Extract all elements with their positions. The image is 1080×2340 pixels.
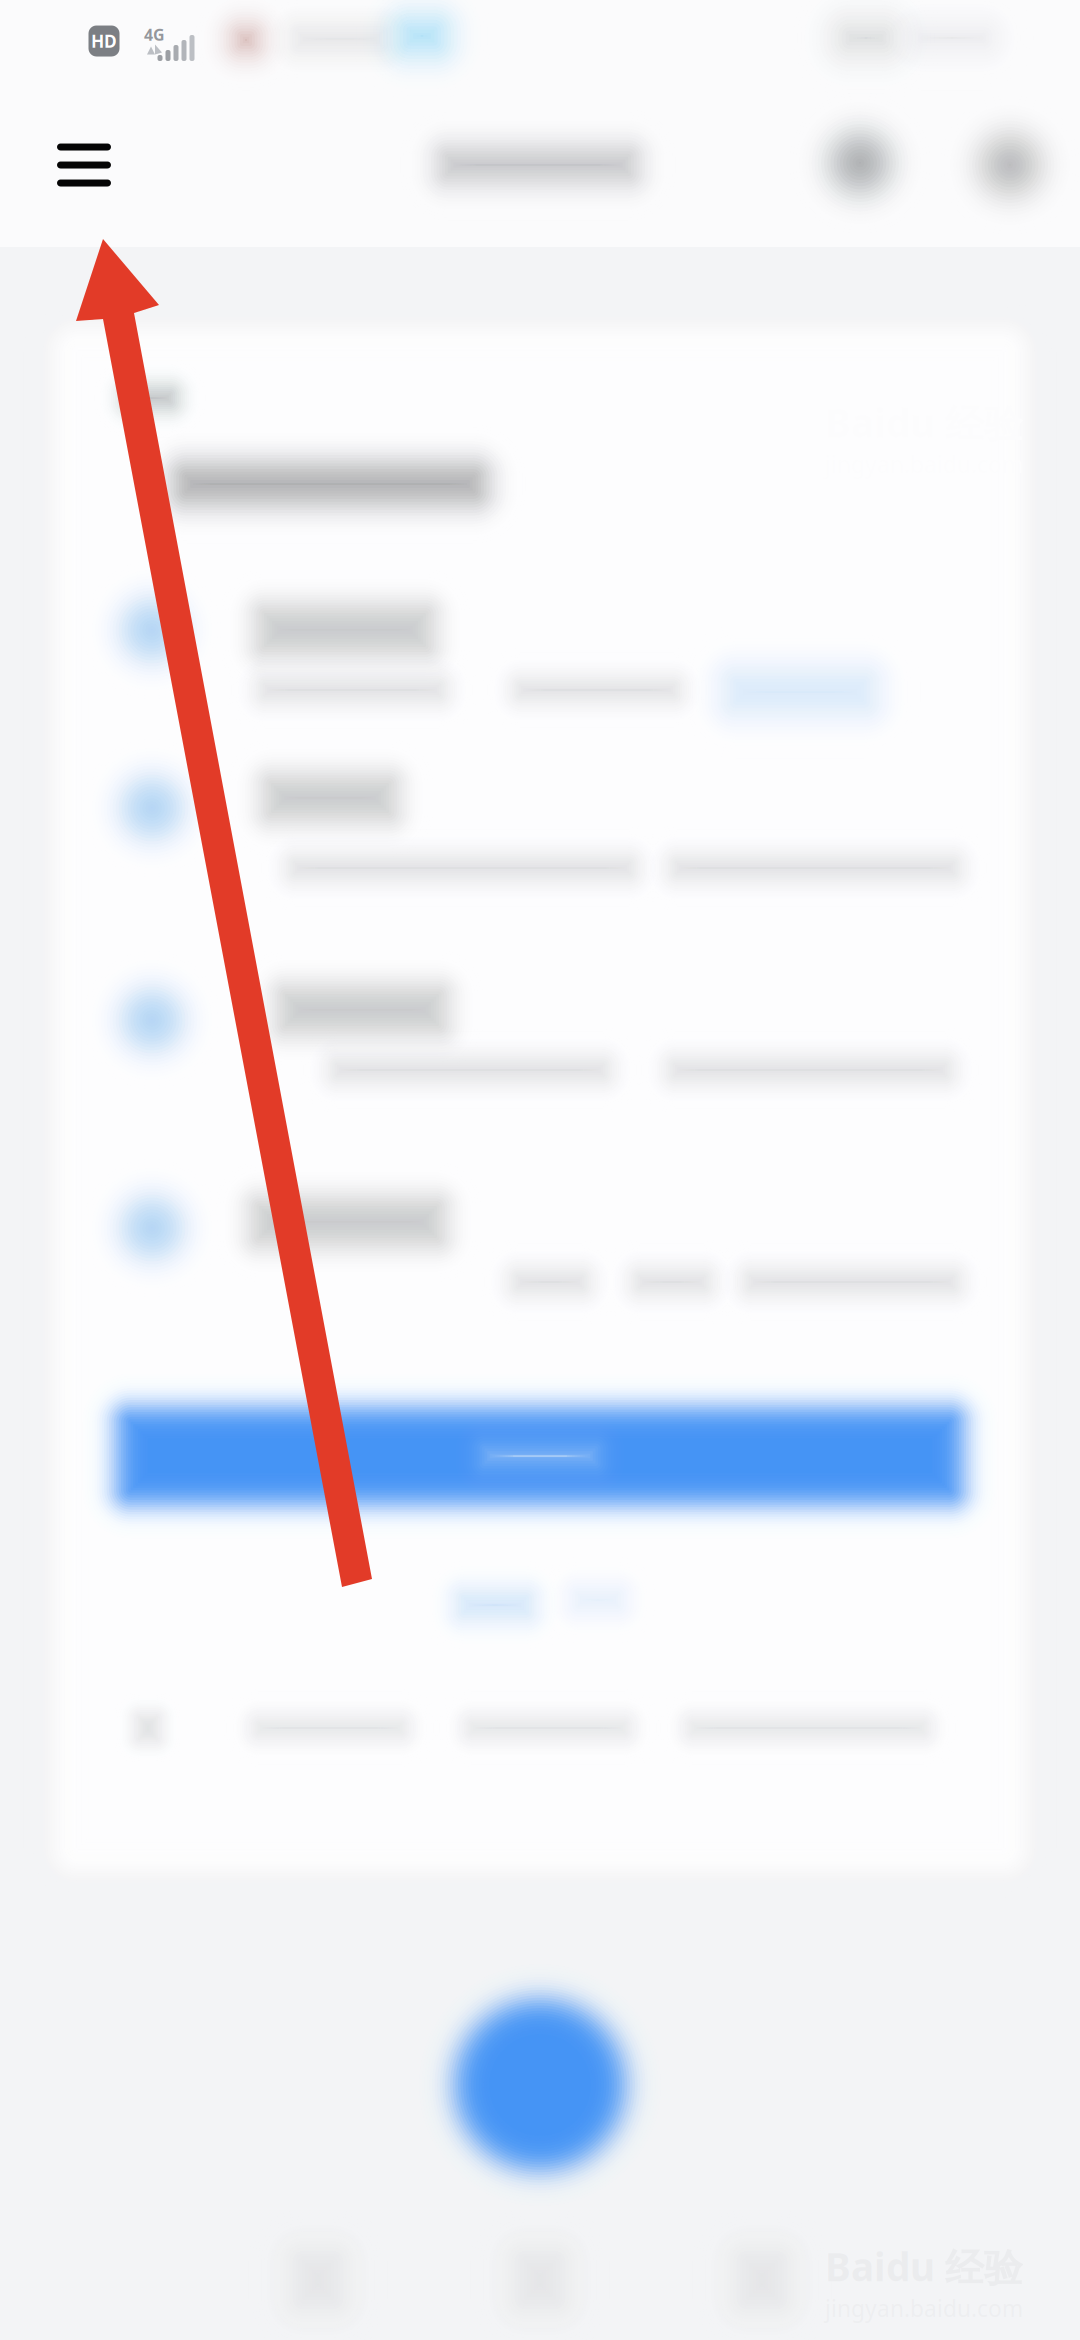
button[interactable]: Menu	[0, 0, 1080, 2340]
button[interactable]	[0, 0, 1080, 2340]
button[interactable]	[0, 0, 1080, 2340]
button[interactable]	[0, 0, 1080, 2340]
button[interactable]: Discover	[0, 0, 1080, 2340]
staticText: Baidu 经验	[825, 2241, 1023, 2292]
button[interactable]: Home	[0, 0, 1080, 2340]
staticText: HD	[91, 29, 117, 52]
button[interactable]	[0, 0, 1080, 2340]
button[interactable]: Profile	[0, 0, 1080, 2340]
button[interactable]	[0, 0, 1080, 2340]
staticText: 4G	[144, 24, 165, 45]
button[interactable]: Compose	[0, 0, 1080, 2340]
